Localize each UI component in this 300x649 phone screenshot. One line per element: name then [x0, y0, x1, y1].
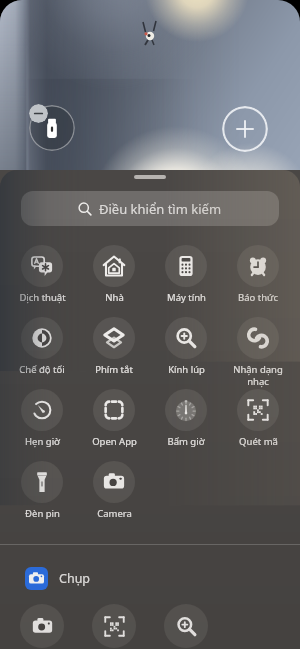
staticText: Nhận dạng nhạc — [233, 363, 283, 388]
button[interactable]: Đèn pin — [6, 461, 78, 520]
button[interactable]: Điều khiển tìm kiếm — [21, 191, 279, 226]
button[interactable]: Bấm giờ — [150, 389, 222, 448]
staticText: Chụp — [59, 570, 91, 587]
button[interactable]: Nhà — [78, 245, 150, 304]
staticText: Chế độ tối — [19, 363, 65, 376]
staticText: Open App — [92, 435, 137, 448]
button[interactable]: Kính lúp — [150, 317, 222, 376]
staticText: Kính lúp — [168, 363, 205, 376]
staticText: Máy tính — [167, 291, 206, 304]
staticText: Nhà — [105, 291, 124, 304]
button[interactable]: Flashlight — [29, 105, 75, 151]
button[interactable]: Chụp — [25, 566, 275, 590]
button[interactable]: Camera — [78, 461, 150, 520]
staticText: Báo thức — [238, 291, 278, 304]
button[interactable]: Magnifier — [164, 604, 208, 648]
staticText: Dịch thuật — [19, 291, 66, 304]
button[interactable]: Nhận dạng nhạc — [222, 317, 294, 388]
staticText: Camera — [97, 507, 132, 520]
button[interactable]: Open App — [78, 389, 150, 448]
staticText: Hẹn giờ — [25, 435, 60, 448]
staticText: Điều khiển tìm kiếm — [99, 200, 222, 218]
button[interactable]: Add control — [222, 106, 268, 152]
staticText: Bấm giờ — [167, 435, 205, 448]
button[interactable]: Turn off flashlight — [29, 104, 48, 123]
button[interactable]: Chế độ tối — [6, 317, 78, 376]
button[interactable]: Dịch thuật — [6, 245, 78, 304]
button[interactable]: Camera — [20, 604, 64, 648]
button[interactable]: Báo thức — [222, 245, 294, 304]
staticText: Quét mã — [239, 435, 278, 448]
staticText: Phím tắt — [95, 363, 133, 376]
button[interactable]: Hẹn giờ — [6, 389, 78, 448]
button[interactable]: Phím tắt — [78, 317, 150, 376]
button[interactable]: Máy tính — [150, 245, 222, 304]
button[interactable]: Quét mã — [222, 389, 294, 448]
button[interactable]: Scan code — [92, 604, 136, 648]
staticText: Đèn pin — [25, 507, 60, 520]
